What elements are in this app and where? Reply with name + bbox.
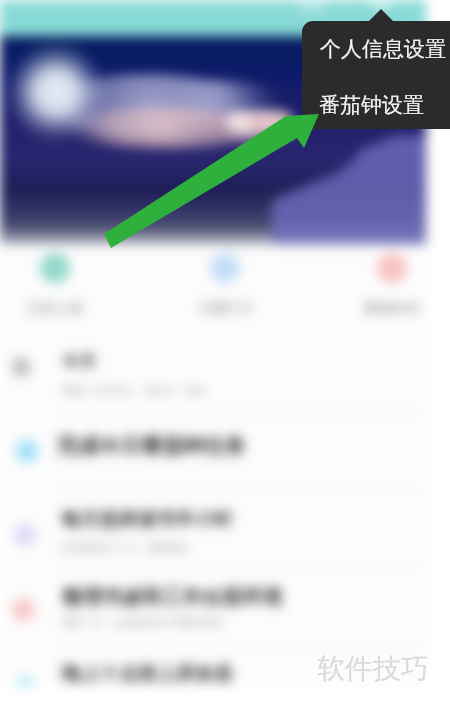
button[interactable]: 习惯打卡	[177, 250, 273, 324]
staticText: 已连续坚持 12 天，继续加油	[61, 540, 188, 554]
other: Menu	[302, 21, 450, 129]
staticText: 整理书桌和工作台面环境	[62, 585, 282, 610]
staticText: 记录心情	[27, 300, 83, 318]
staticText: 晚上十点前上床休息	[62, 662, 233, 686]
staticText: 今天	[62, 351, 96, 372]
button[interactable]: 记录心情	[7, 250, 103, 324]
staticText: 习惯打卡	[197, 300, 253, 318]
staticText: 番茄时钟	[364, 300, 420, 318]
staticText: 软件技巧	[317, 651, 429, 686]
staticText: 完成今日番茄钟任务	[57, 433, 246, 459]
staticText: 每天坚持读书半小时	[61, 508, 232, 532]
button[interactable]: 番茄时钟	[344, 250, 440, 324]
staticText: 个人信息设置	[320, 36, 446, 62]
staticText: 星期三 九月廿八 宜出行、会友	[62, 383, 205, 397]
button[interactable]: 个人信息设置	[302, 22, 450, 76]
staticText: 每周一次，让桌面保持干净整洁舒适	[62, 616, 222, 629]
button[interactable]: 番茄钟设置	[302, 78, 450, 129]
staticText: 番茄钟设置	[319, 92, 424, 118]
staticText: 主1天	[251, 113, 288, 132]
